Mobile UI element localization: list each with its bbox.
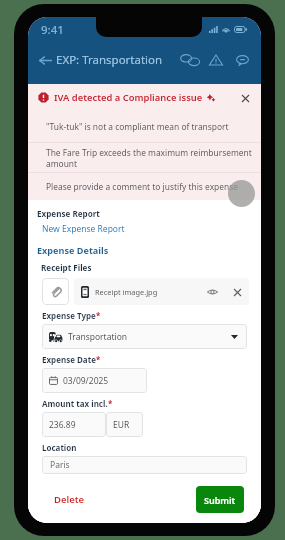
staticText: "Tuk-tuk" is not a compliant mean of tra… xyxy=(46,121,229,132)
staticText: * xyxy=(96,354,101,365)
staticText: Delete xyxy=(54,493,85,506)
button[interactable]: The Fare Trip exceeds the maximum reimbu… xyxy=(28,143,261,172)
staticText: Expense Report xyxy=(37,208,100,219)
button[interactable]: EUR xyxy=(106,412,143,437)
button[interactable]: Warnings xyxy=(204,48,228,72)
button[interactable]: Delete xyxy=(48,488,91,511)
staticText: The Fare Trip exceeds the maximum reimbu… xyxy=(46,147,252,169)
button[interactable]: "Tuk-tuk" is not a compliant mean of tra… xyxy=(28,111,261,142)
staticText: Amount tax incl. xyxy=(42,398,108,409)
staticText: Submit xyxy=(204,494,236,506)
staticText: Expense Date xyxy=(42,354,96,365)
staticText: IVA detected a Compliance issue xyxy=(54,91,203,104)
button[interactable]: 236.89 xyxy=(42,412,106,437)
staticText: * xyxy=(96,310,101,321)
button[interactable]: 03/09/2025 xyxy=(42,368,147,393)
button[interactable]: Paris xyxy=(42,456,247,474)
button[interactable]: Transportation xyxy=(42,324,247,349)
button[interactable]: Attach file xyxy=(42,278,69,305)
staticText: EUR xyxy=(113,419,130,431)
button[interactable]: Please provide a comment to justify this… xyxy=(28,173,261,200)
staticText: 236.89 xyxy=(49,419,76,431)
staticText: Please provide a comment to justify this… xyxy=(46,181,238,192)
staticText: Receipt image.jpg xyxy=(95,287,158,297)
staticText: Expense Details xyxy=(37,244,109,256)
button[interactable]: Preview xyxy=(201,281,223,303)
staticText: Expense Type xyxy=(42,310,96,321)
staticText: 03/09/2025 xyxy=(63,375,109,387)
button[interactable]: Comments xyxy=(230,48,254,72)
button[interactable]: Receipt image.jpg xyxy=(74,278,249,305)
button[interactable]: New Expense Report xyxy=(42,223,125,235)
staticText: 9:41 xyxy=(41,22,64,38)
button[interactable]: Submit xyxy=(196,486,244,513)
staticText: Paris xyxy=(50,459,70,471)
button[interactable]: Back xyxy=(31,46,59,74)
button[interactable]: Close xyxy=(235,88,255,108)
button[interactable]: Chat xyxy=(178,48,202,72)
staticText: * xyxy=(108,398,113,409)
staticText: Transportation xyxy=(68,331,128,343)
staticText: Location xyxy=(42,442,77,453)
button[interactable]: Remove xyxy=(226,281,248,303)
staticText: Receipt Files xyxy=(41,262,92,273)
staticText: EXP: Transportation xyxy=(56,52,163,68)
